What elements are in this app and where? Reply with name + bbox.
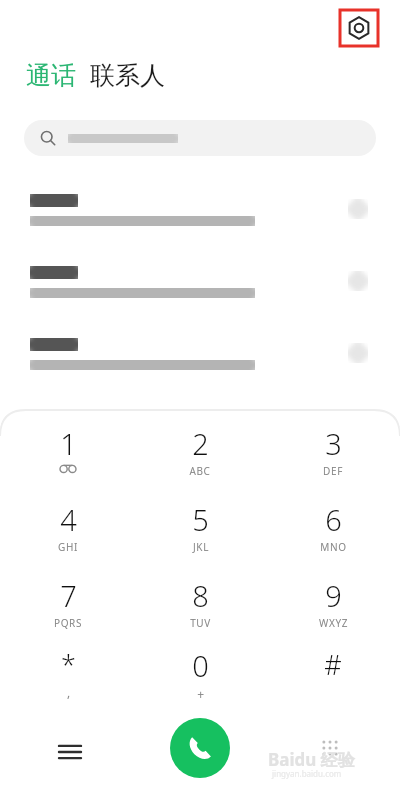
staticText: 4 <box>60 500 77 539</box>
button[interactable]: 通话 <box>26 60 76 91</box>
button[interactable]: # <box>289 646 377 710</box>
staticText: WXYZ <box>319 616 348 630</box>
button[interactable] <box>24 120 376 156</box>
staticText: 0 <box>192 646 209 685</box>
button[interactable]: Settings <box>340 10 378 46</box>
staticText: 9 <box>325 576 342 615</box>
staticText: * <box>61 646 76 683</box>
staticText: 8 <box>192 576 209 615</box>
button[interactable]: 8 <box>156 576 244 640</box>
staticText: Baidu 经验 <box>268 748 355 771</box>
button[interactable]: 2 <box>156 424 244 488</box>
button[interactable]: More options <box>46 728 94 776</box>
button[interactable] <box>0 262 400 324</box>
staticText: 5 <box>192 500 209 539</box>
button[interactable]: 6 <box>289 500 377 564</box>
staticText: 通话 <box>26 60 76 91</box>
button[interactable]: 4 <box>24 500 112 564</box>
staticText: 6 <box>325 500 342 539</box>
button[interactable]: 9 <box>289 576 377 640</box>
staticText: TUV <box>190 616 211 630</box>
staticText: # <box>324 646 342 683</box>
staticText: JKL <box>193 540 209 554</box>
button[interactable]: 0 <box>156 646 244 710</box>
staticText: jingyan.baidu.com <box>272 768 342 779</box>
staticText: GHI <box>58 540 78 554</box>
button[interactable]: Call <box>170 718 230 778</box>
staticText: 1 <box>60 424 77 463</box>
button[interactable] <box>0 190 400 252</box>
button[interactable]: 7 <box>24 576 112 640</box>
staticText: , <box>67 684 71 700</box>
staticText: ABC <box>189 464 211 478</box>
staticText: 2 <box>192 424 209 463</box>
button[interactable]: * <box>24 646 112 710</box>
button[interactable] <box>0 334 400 396</box>
button[interactable]: 1 <box>24 424 112 488</box>
staticText: 3 <box>325 424 342 463</box>
staticText: + <box>197 686 205 702</box>
staticText: PQRS <box>54 616 82 630</box>
button[interactable]: 5 <box>156 500 244 564</box>
staticText: 7 <box>60 576 77 615</box>
staticText: MNO <box>320 540 347 554</box>
staticText: DEF <box>323 464 343 478</box>
staticText: 联系人 <box>90 60 165 91</box>
button[interactable]: 联系人 <box>90 60 165 91</box>
button[interactable]: Keypad <box>308 726 352 770</box>
button[interactable]: 3 <box>289 424 377 488</box>
